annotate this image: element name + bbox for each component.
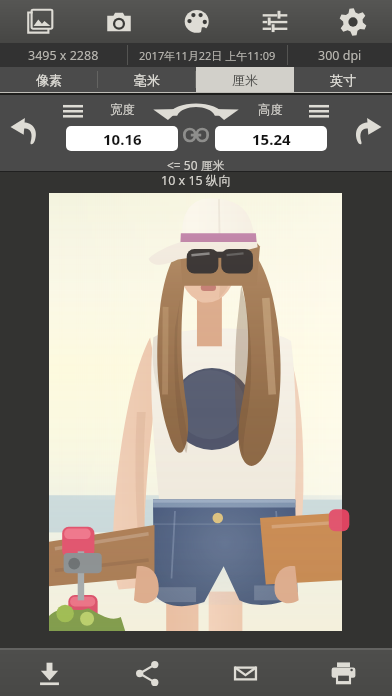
button[interactable]: Palette	[158, 0, 236, 43]
button[interactable]: Save	[0, 650, 98, 696]
button[interactable]: Adjust	[236, 0, 314, 43]
button[interactable]: 毫米	[98, 67, 196, 92]
button[interactable]: Undo	[0, 106, 48, 154]
button[interactable]: Camera	[79, 0, 158, 43]
staticText: 毫米	[134, 72, 160, 88]
button[interactable]: 英寸	[294, 67, 392, 92]
staticText: 300 dpi	[318, 47, 362, 64]
staticText: 英寸	[330, 72, 356, 88]
staticText: <= 50 厘米	[167, 157, 225, 171]
button[interactable]: 10.16	[66, 126, 178, 151]
button[interactable]: Settings	[314, 0, 392, 43]
staticText: 10.16	[103, 129, 142, 149]
button[interactable]: Lock aspect ratio	[180, 124, 212, 146]
staticText: 15.24	[252, 129, 291, 149]
button[interactable]: 15.24	[215, 126, 327, 151]
staticText: 10 x 15 纵向	[161, 172, 231, 189]
staticText: 3495 x 2288	[28, 47, 99, 64]
staticText: 2017年11月22日 上午11:09	[139, 48, 276, 63]
staticText: 像素	[36, 72, 62, 88]
button[interactable]: Share	[98, 650, 196, 696]
button[interactable]: Gallery	[0, 0, 79, 43]
button[interactable]: Width units menu	[63, 102, 83, 117]
staticText: 宽度	[110, 102, 135, 118]
staticText: 厘米	[232, 72, 258, 88]
button[interactable]: 像素	[0, 67, 98, 92]
button[interactable]: Redo	[344, 106, 392, 154]
button[interactable]: Email	[196, 650, 294, 696]
button[interactable]: Print	[294, 650, 392, 696]
button[interactable]: Height units menu	[309, 102, 329, 117]
staticText: 高度	[258, 102, 283, 118]
button[interactable]: 厘米	[196, 67, 294, 92]
